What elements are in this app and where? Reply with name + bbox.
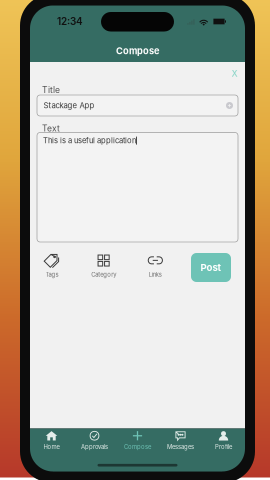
staticText: Messages (167, 443, 194, 450)
staticText: X (231, 68, 237, 79)
staticText: Category (91, 271, 116, 278)
button[interactable]: Category (88, 253, 120, 282)
staticText: Post (200, 262, 221, 273)
staticText: Home (43, 443, 59, 450)
button[interactable]: Compose (116, 426, 159, 474)
staticText: Text (42, 123, 60, 133)
button[interactable]: Profile (202, 426, 245, 474)
button[interactable]: Links (139, 253, 171, 282)
button[interactable]: Messages (159, 426, 202, 474)
staticText: 12:34 (57, 15, 83, 27)
staticText: Profile (215, 443, 232, 450)
button[interactable]: Home (30, 426, 73, 474)
staticText: Compose (116, 45, 159, 56)
button[interactable]: Approvals (73, 426, 116, 474)
staticText: Stackage App (43, 101, 94, 110)
staticText: Title (42, 85, 60, 95)
button[interactable]: Post (191, 253, 231, 282)
button[interactable]: Tags (36, 253, 68, 282)
button[interactable]: Close (228, 68, 241, 79)
staticText: This is a useful application (43, 136, 136, 145)
staticText: Tags (45, 271, 58, 278)
staticText: Approvals (81, 443, 108, 450)
staticText: Compose (124, 443, 151, 450)
staticText: Links (149, 271, 162, 278)
